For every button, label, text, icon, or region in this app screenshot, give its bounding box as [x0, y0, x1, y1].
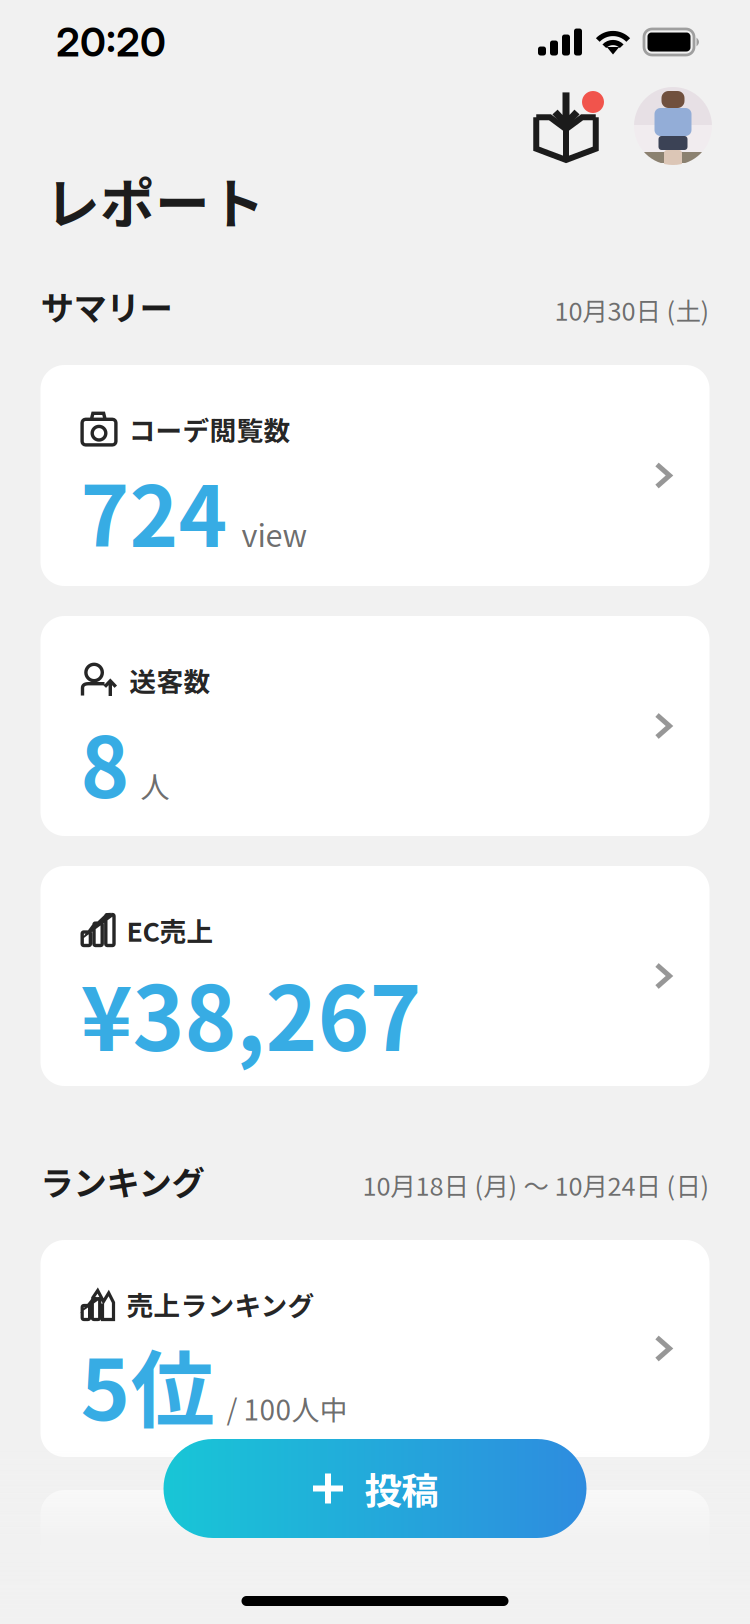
staticText: EC売上 — [126, 911, 213, 949]
staticText: レポート — [45, 160, 265, 240]
button[interactable]: 送客数 — [40, 616, 709, 836]
staticText: 724 — [80, 451, 227, 571]
staticText: 5位 — [80, 1323, 214, 1445]
staticText: 人 — [140, 764, 169, 806]
button[interactable]: コーデ閲覧数 — [40, 365, 709, 586]
button[interactable]: 売上ランキング — [40, 1240, 709, 1457]
staticText: 10月30日 (土) — [554, 291, 709, 328]
button[interactable]: プロフィール — [634, 87, 712, 165]
staticText: 送客数 — [129, 661, 210, 699]
staticText: ¥38,267 — [80, 949, 421, 1076]
staticText: 10月18日 (月) 〜 10月24日 (日) — [362, 1166, 709, 1203]
staticText: 20:20 — [56, 18, 166, 66]
staticText: 8 — [80, 702, 129, 822]
button[interactable]: 投稿 — [163, 1439, 586, 1538]
button[interactable]: 受信ボックス — [530, 90, 602, 162]
staticText: 売上ランキング — [126, 1285, 314, 1323]
staticText: コーデ閲覧数 — [128, 410, 290, 448]
staticText: 投稿 — [364, 1461, 438, 1516]
staticText: サマリー — [40, 282, 172, 330]
staticText: view — [241, 511, 307, 556]
staticText: / 100人中 — [226, 1388, 347, 1428]
button[interactable]: EC売上 — [40, 866, 709, 1086]
staticText: ランキング — [40, 1157, 204, 1205]
